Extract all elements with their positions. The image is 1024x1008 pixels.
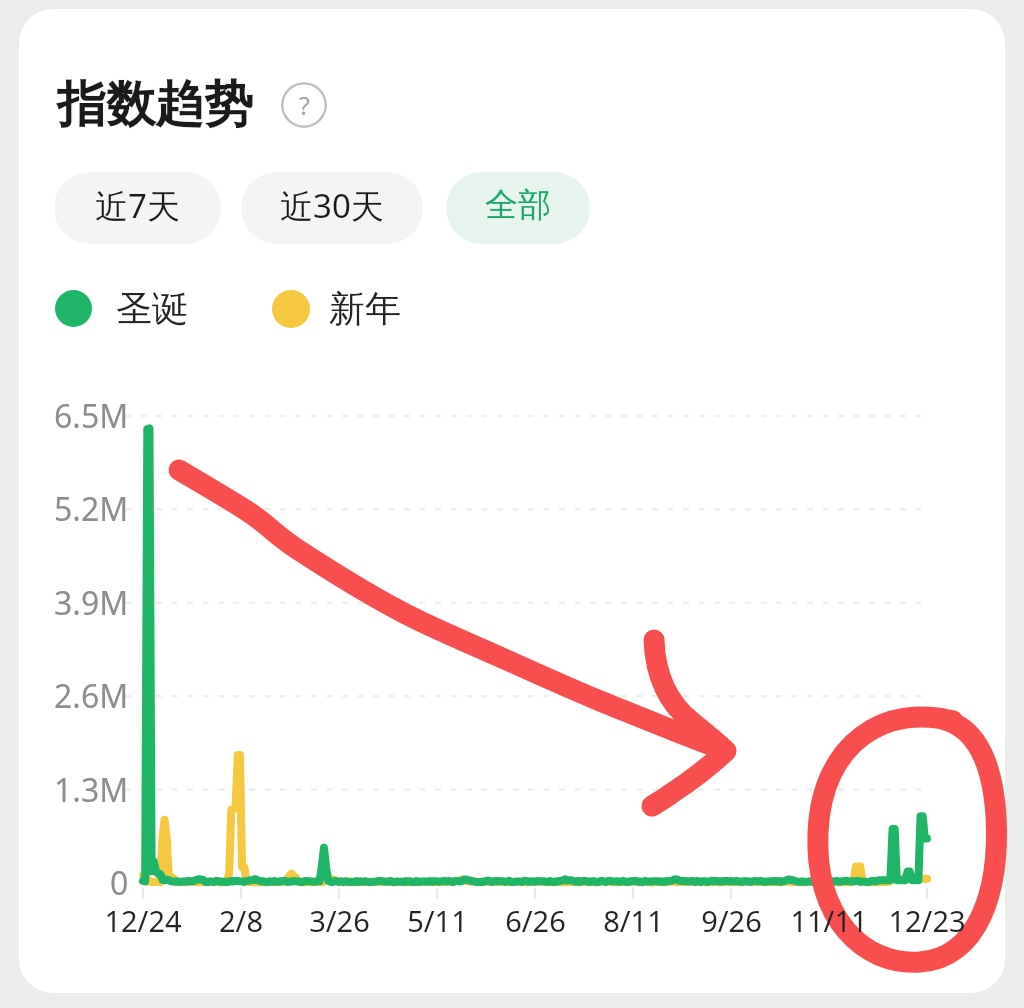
staticText: 6/26	[505, 901, 566, 940]
button[interactable]: 全部	[446, 172, 590, 244]
staticText: 1.3M	[54, 768, 129, 812]
staticText: 9/26	[701, 901, 762, 940]
staticText: 5/11	[407, 901, 468, 940]
staticText: 8/11	[603, 901, 664, 940]
staticText: 12/23	[888, 901, 966, 940]
staticText: 全部	[485, 184, 551, 226]
button[interactable]: 近30天	[241, 172, 423, 244]
staticText: 新年	[329, 286, 401, 331]
staticText: 6.5M	[54, 394, 129, 438]
staticText: 11/11	[790, 901, 868, 940]
staticText: 12/24	[104, 901, 182, 940]
staticText: 3.9M	[54, 581, 129, 625]
staticText: 2.6M	[54, 674, 129, 718]
staticText: 2/8	[219, 901, 263, 940]
staticText: 近7天	[95, 183, 180, 228]
button[interactable]: 近7天	[54, 172, 221, 244]
staticText: 指数趋势	[57, 74, 253, 136]
staticText: 3/26	[309, 901, 370, 940]
staticText: 近30天	[280, 183, 384, 228]
button[interactable]: Help	[281, 82, 327, 128]
staticText: 0	[110, 861, 129, 905]
staticText: 圣诞	[116, 286, 188, 331]
staticText: 5.2M	[54, 487, 129, 531]
staticText: ?	[299, 88, 310, 122]
